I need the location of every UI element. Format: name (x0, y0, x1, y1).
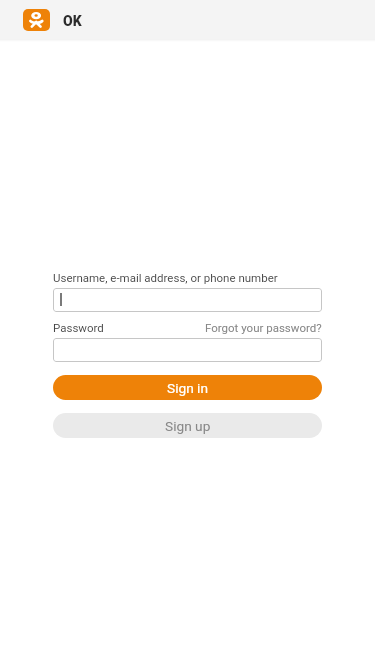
staticText: Password (53, 321, 104, 334)
button[interactable]: Username, e-mail address, or phone numbe… (53, 288, 322, 312)
staticText: OK (63, 13, 82, 29)
other: OK home (23, 9, 50, 31)
staticText: Sign up (165, 418, 211, 434)
button[interactable]: Password (53, 338, 322, 362)
staticText: Username, e-mail address, or phone numbe… (53, 271, 278, 284)
staticText: Sign in (167, 380, 208, 396)
button[interactable]: Sign up (53, 413, 322, 438)
button[interactable]: Forgot your password? (205, 321, 322, 334)
button[interactable]: Sign in (53, 375, 322, 400)
